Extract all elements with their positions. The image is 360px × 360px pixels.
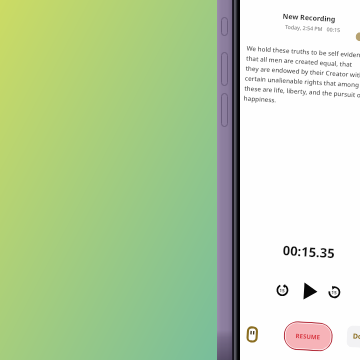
staticText: 15 [331,289,337,295]
staticText: RESUME [295,332,321,341]
button[interactable]: RESUME [283,320,333,352]
staticText: New Recording [282,12,336,25]
staticText: 15 [279,287,286,293]
staticText: Done [352,331,360,342]
staticText: Today, 2:54 PM 00:15 [285,23,341,33]
button[interactable]: Rewind 15 seconds [276,284,289,296]
button[interactable]: Forward 15 seconds [328,286,341,299]
staticText: We hold these truths to be self evident … [244,44,360,109]
button[interactable]: Play [303,282,318,300]
button[interactable]: Done [346,325,360,349]
button[interactable]: Account [355,32,360,42]
button[interactable]: Transcript [246,326,258,343]
staticText: 00:15.35 [282,241,335,262]
